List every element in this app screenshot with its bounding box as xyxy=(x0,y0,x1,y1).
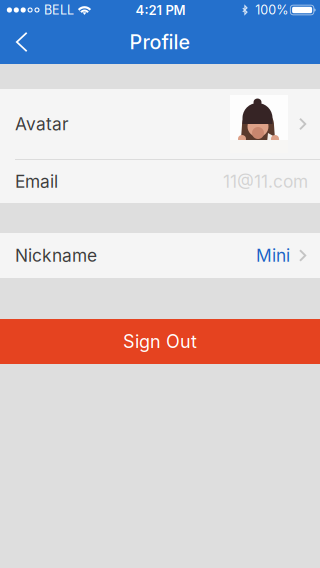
staticText: BELL xyxy=(44,2,74,18)
staticText: Mini xyxy=(256,245,290,266)
button[interactable]: Sign Out xyxy=(0,319,320,364)
staticText: Email xyxy=(15,171,58,192)
button[interactable]: Back xyxy=(0,20,54,64)
staticText: 4:21 PM xyxy=(135,2,185,18)
staticText: Nickname xyxy=(15,245,97,266)
staticText: Sign Out xyxy=(123,331,197,352)
staticText: Profile xyxy=(129,30,190,54)
button[interactable]: Avatar xyxy=(0,89,320,159)
staticText: 11@11.com xyxy=(223,171,308,192)
button[interactable]: Nickname xyxy=(0,233,320,278)
staticText: Avatar xyxy=(15,113,69,134)
staticText: 100% xyxy=(255,2,288,18)
